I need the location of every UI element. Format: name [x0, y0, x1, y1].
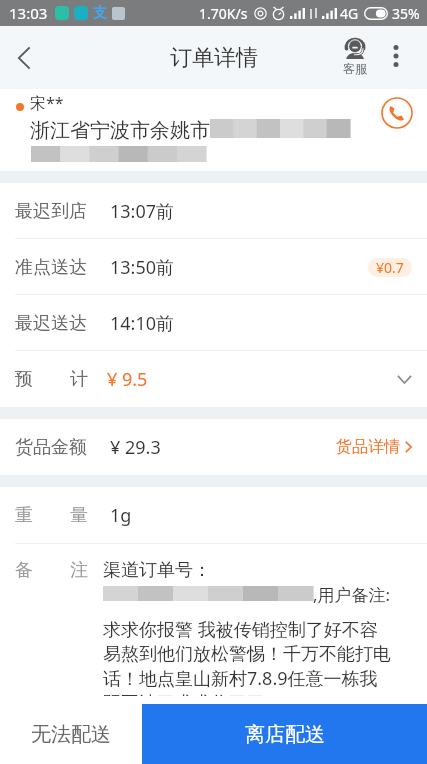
button[interactable]: 返回	[0, 35, 46, 81]
staticText: 求求你报警 我被传销控制了好不容易熬到他们放松警惕！千万不能打电话！地点皇山新村…	[103, 617, 395, 696]
button[interactable]: 最迟到店	[0, 183, 427, 239]
staticText: 13:03	[9, 3, 48, 23]
staticText: ¥ 29.3	[110, 435, 161, 460]
button[interactable]: 准点送达	[0, 239, 427, 295]
staticText: 量	[70, 504, 88, 527]
staticText: 13:50前	[110, 255, 175, 280]
staticText: ,用户备注:	[313, 583, 391, 606]
staticText: 最迟到店	[15, 200, 87, 223]
button[interactable]: 备	[0, 544, 427, 704]
staticText: 订单详情	[170, 44, 258, 72]
button[interactable]: 无法配送	[0, 704, 142, 764]
button[interactable]: 预	[0, 351, 427, 407]
staticText: 浙江省宁波市余姚市	[30, 118, 210, 143]
staticText: 计	[70, 368, 88, 391]
staticText: ¥ 9.5	[107, 367, 148, 392]
staticText: 无法配送	[31, 722, 111, 747]
staticText: ¥0.7	[376, 258, 404, 277]
button[interactable]: 重	[0, 487, 427, 544]
staticText: 准点送达	[15, 256, 87, 279]
button[interactable]: 拨打电话	[381, 97, 413, 129]
staticText: 离店配送	[245, 722, 325, 747]
staticText: 支	[93, 4, 107, 22]
staticText: 1g	[110, 503, 132, 528]
button[interactable]: 最迟送达	[0, 295, 427, 351]
button[interactable]: 离店配送	[142, 704, 427, 764]
button[interactable]: 货品金额	[0, 419, 427, 475]
staticText: 宋**	[30, 92, 64, 114]
staticText: 重	[15, 504, 33, 527]
staticText: 4G	[340, 4, 359, 23]
staticText: 备	[15, 559, 33, 582]
button[interactable]: 客服	[335, 35, 375, 76]
staticText: 渠道订单号：	[103, 559, 211, 582]
staticText: 货品金额	[15, 436, 87, 459]
staticText: 14:10前	[110, 311, 175, 336]
staticText: 最迟送达	[15, 312, 87, 335]
staticText: 1.70K/s	[199, 4, 248, 23]
staticText: 货品详情	[336, 437, 400, 457]
staticText: 注	[70, 559, 88, 582]
button[interactable]: 更多	[379, 39, 412, 72]
staticText: 13:07前	[110, 199, 175, 224]
staticText: 35%	[392, 4, 420, 23]
staticText: 客服	[343, 61, 367, 76]
staticText: 预	[15, 368, 33, 391]
